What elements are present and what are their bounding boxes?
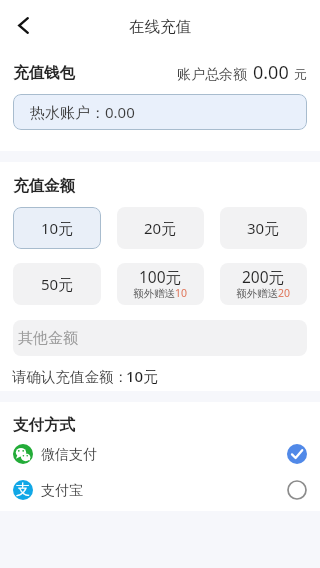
staticText: 支 <box>16 481 30 499</box>
button[interactable]: 20元 <box>117 207 204 249</box>
staticText: 200元 <box>242 266 285 287</box>
staticText: 支付宝 <box>41 482 83 500</box>
button[interactable]: 微信支付 <box>13 436 307 472</box>
staticText: 20元 <box>144 218 177 238</box>
staticText: 请确认充值金额： <box>12 368 128 386</box>
button[interactable]: 支 <box>13 472 307 508</box>
staticText: 其他金额 <box>18 329 78 348</box>
staticText: 热水账户：0.00 <box>30 102 135 122</box>
staticText: 充值钱包 <box>13 63 75 83</box>
staticText: 100元 <box>139 266 182 287</box>
staticText: 额外赠送20 <box>236 286 291 300</box>
button[interactable]: 50元 <box>13 263 101 305</box>
staticText: 元 <box>294 66 307 82</box>
staticText: 0.00 <box>253 60 289 85</box>
staticText: 支付方式 <box>13 415 75 435</box>
staticText: 在线充值 <box>129 17 191 37</box>
button[interactable]: 200元 <box>220 263 307 305</box>
button[interactable]: 30元 <box>220 207 307 249</box>
button[interactable]: 其他金额 <box>13 320 307 356</box>
staticText: 充值金额 <box>13 176 75 196</box>
staticText: 10元 <box>41 218 74 238</box>
staticText: 10元 <box>126 366 159 386</box>
button[interactable]: 100元 <box>117 263 204 305</box>
button[interactable]: Back <box>7 9 39 41</box>
staticText: 微信支付 <box>41 446 97 464</box>
staticText: 额外赠送10 <box>133 286 188 300</box>
staticText: 50元 <box>41 274 74 294</box>
staticText: 30元 <box>247 218 280 238</box>
button[interactable]: 热水账户：0.00 <box>13 94 307 130</box>
staticText: 账户总余额 <box>177 66 247 84</box>
button[interactable]: 10元 <box>13 207 101 249</box>
